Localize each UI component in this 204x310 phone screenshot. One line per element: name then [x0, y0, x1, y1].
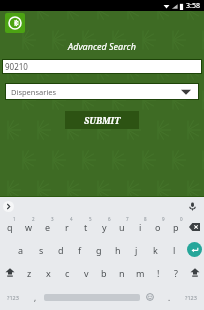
staticText: SUBMIT: [84, 114, 121, 126]
button[interactable]: h: [108, 238, 127, 261]
staticText: 2: [32, 216, 35, 222]
button[interactable]: y: [95, 215, 113, 238]
staticText: ?: [174, 267, 178, 279]
staticText: z: [27, 267, 32, 279]
button[interactable]: r: [57, 215, 76, 238]
button[interactable]: e: [38, 215, 57, 238]
button[interactable]: x: [39, 261, 58, 284]
staticText: l: [173, 244, 176, 256]
button[interactable]: p: [167, 215, 185, 238]
button[interactable]: Shift: [0, 261, 20, 284]
staticText: 4: [70, 216, 73, 222]
button[interactable]: j: [127, 238, 146, 261]
staticText: 1: [13, 216, 16, 222]
staticText: c: [65, 267, 70, 279]
staticText: ?123: [185, 294, 197, 301]
staticText: 6: [108, 216, 111, 222]
button[interactable]: !: [149, 261, 167, 284]
button[interactable]: o: [149, 215, 167, 238]
button[interactable]: u: [113, 215, 131, 238]
staticText: !: [157, 267, 160, 279]
staticText: w: [25, 221, 33, 233]
staticText: 9: [162, 216, 165, 222]
button[interactable]: g: [89, 238, 108, 261]
staticText: s: [39, 244, 44, 256]
button[interactable]: w: [19, 215, 38, 238]
staticText: g: [96, 244, 102, 256]
staticText: n: [119, 267, 125, 279]
button[interactable]: f: [70, 238, 89, 261]
staticText: f: [78, 244, 82, 256]
button[interactable]: App logo: [5, 13, 25, 33]
staticText: p: [173, 221, 179, 233]
staticText: ?123: [7, 294, 19, 301]
staticText: j: [135, 244, 138, 256]
staticText: 3:58: [186, 1, 200, 11]
staticText: h: [115, 244, 121, 256]
button[interactable]: s: [31, 238, 51, 261]
button[interactable]: k: [146, 238, 165, 261]
button[interactable]: .: [160, 284, 178, 310]
staticText: u: [119, 221, 125, 233]
button[interactable]: [44, 284, 140, 310]
staticText: 90210: [5, 61, 28, 72]
staticText: v: [84, 267, 89, 279]
staticText: t: [84, 221, 88, 233]
button[interactable]: Backspace: [185, 215, 204, 238]
staticText: k: [153, 244, 158, 256]
button[interactable]: Enter: [187, 242, 202, 257]
button[interactable]: q: [0, 215, 19, 238]
button[interactable]: l: [165, 238, 184, 261]
staticText: 5: [89, 216, 92, 222]
staticText: m: [136, 267, 145, 279]
staticText: d: [58, 244, 64, 256]
button[interactable]: SUBMIT: [65, 111, 139, 129]
button[interactable]: a: [11, 238, 31, 261]
staticText: 8: [144, 216, 147, 222]
button[interactable]: m: [131, 261, 149, 284]
button[interactable]: Expand toolbar: [3, 201, 14, 212]
staticText: e: [45, 221, 51, 233]
staticText: q: [7, 221, 13, 233]
button[interactable]: c: [58, 261, 77, 284]
staticText: y: [102, 221, 107, 233]
button[interactable]: ?123: [178, 284, 204, 310]
button[interactable]: ?123: [0, 284, 26, 310]
staticText: x: [46, 267, 51, 279]
button[interactable]: z: [20, 261, 39, 284]
button[interactable]: Shift: [185, 261, 204, 284]
staticText: o: [155, 221, 161, 233]
button[interactable]: v: [77, 261, 95, 284]
staticText: .: [168, 292, 171, 303]
button[interactable]: ?: [167, 261, 185, 284]
button[interactable]: b: [95, 261, 113, 284]
button[interactable]: Voice input: [186, 200, 198, 212]
button[interactable]: Emoji: [140, 284, 160, 310]
staticText: i: [139, 221, 142, 233]
button[interactable]: Dispensaries: [5, 83, 199, 100]
button[interactable]: ,: [26, 284, 44, 310]
button[interactable]: i: [131, 215, 149, 238]
staticText: a: [18, 244, 24, 256]
staticText: b: [101, 267, 107, 279]
staticText: ,: [34, 292, 37, 303]
button[interactable]: d: [51, 238, 70, 261]
staticText: r: [65, 221, 69, 233]
button[interactable]: t: [76, 215, 95, 238]
button[interactable]: n: [113, 261, 131, 284]
staticText: Dispensaries: [11, 87, 57, 97]
staticText: Advanced Search: [68, 40, 136, 52]
staticText: 7: [126, 216, 129, 222]
staticText: 0: [180, 216, 183, 222]
button[interactable]: 90210: [2, 59, 202, 74]
staticText: 3: [51, 216, 54, 222]
